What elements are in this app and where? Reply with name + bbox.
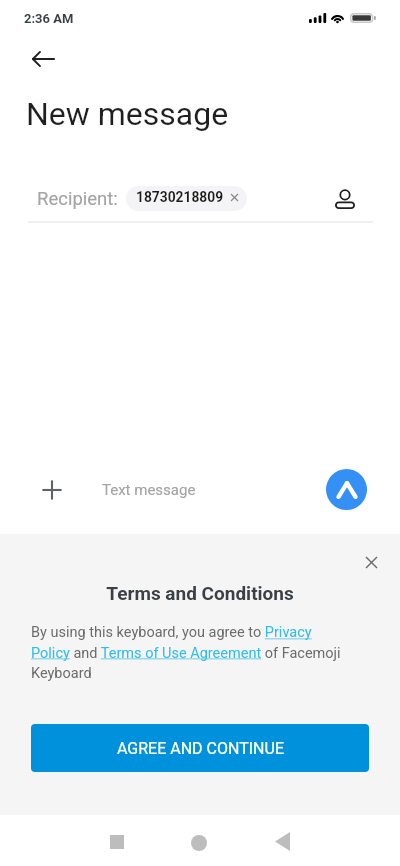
staticText: 18730218809 bbox=[136, 189, 224, 205]
button[interactable]: Recents bbox=[90, 816, 144, 866]
staticText: AGREE AND CONTINUE bbox=[117, 739, 284, 758]
button[interactable]: Close bbox=[356, 547, 387, 577]
button[interactable]: AGREE AND CONTINUE bbox=[31, 724, 369, 772]
button[interactable]: Send bbox=[326, 469, 367, 510]
staticText: Terms and Conditions bbox=[0, 582, 400, 604]
staticText: Text message bbox=[102, 481, 196, 499]
staticText: Recipient: bbox=[37, 188, 118, 210]
staticText: New message bbox=[26, 95, 229, 133]
button[interactable]: Back bbox=[255, 816, 309, 866]
button[interactable]: Choose contact bbox=[330, 183, 360, 215]
button[interactable]: Back bbox=[21, 37, 65, 81]
button[interactable]: Add attachment bbox=[32, 470, 72, 510]
staticText: 2:36 AM bbox=[24, 11, 74, 26]
button[interactable]: Home bbox=[172, 817, 226, 866]
button[interactable]: 18730218809 bbox=[126, 186, 247, 211]
staticText: By using this keyboard, you agree to Pri… bbox=[31, 624, 347, 681]
